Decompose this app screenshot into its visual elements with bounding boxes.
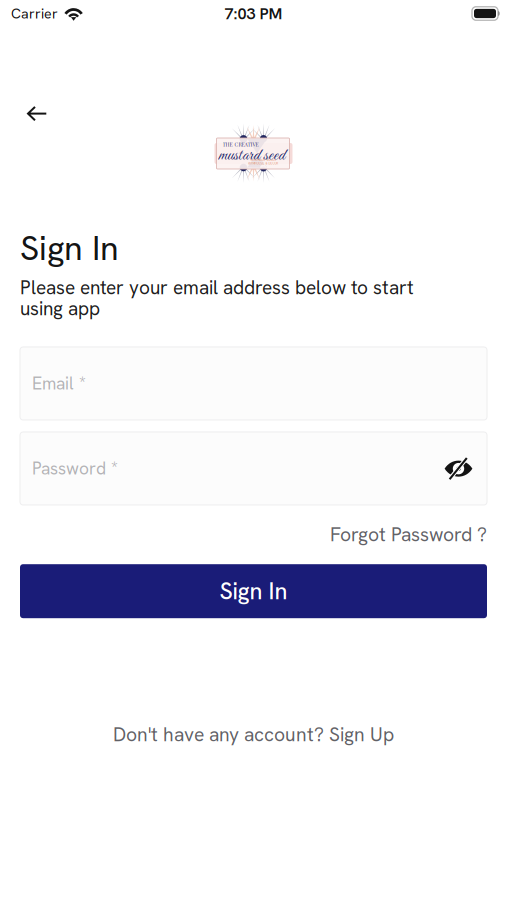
staticText: Don't have any account? Sign Up xyxy=(113,722,394,747)
staticText: FARMHOUSE & DECOR xyxy=(247,162,278,165)
button[interactable]: Back xyxy=(10,96,61,131)
staticText: 7:03 PM xyxy=(224,3,282,24)
staticText: mustard seed xyxy=(218,144,285,166)
button[interactable]: Sign In xyxy=(20,564,487,618)
staticText: Sign In xyxy=(20,226,119,270)
button[interactable]: Forgot Password ? xyxy=(318,515,487,554)
staticText: THE CREATIVE xyxy=(222,141,258,148)
staticText: Please enter your email address below to… xyxy=(20,275,414,321)
staticText: Carrier xyxy=(11,4,58,23)
staticText: Email * xyxy=(32,372,86,395)
staticText: Sign In xyxy=(219,576,287,606)
button[interactable]: Email * xyxy=(20,347,487,420)
button[interactable]: Don't have any account? Sign Up xyxy=(99,714,408,755)
staticText: Forgot Password ? xyxy=(330,522,487,547)
staticText: HANDMADE GOODS xyxy=(249,158,276,162)
button[interactable]: Show password xyxy=(432,446,473,491)
button[interactable]: Password * xyxy=(20,432,487,505)
staticText: Password * xyxy=(32,457,118,480)
